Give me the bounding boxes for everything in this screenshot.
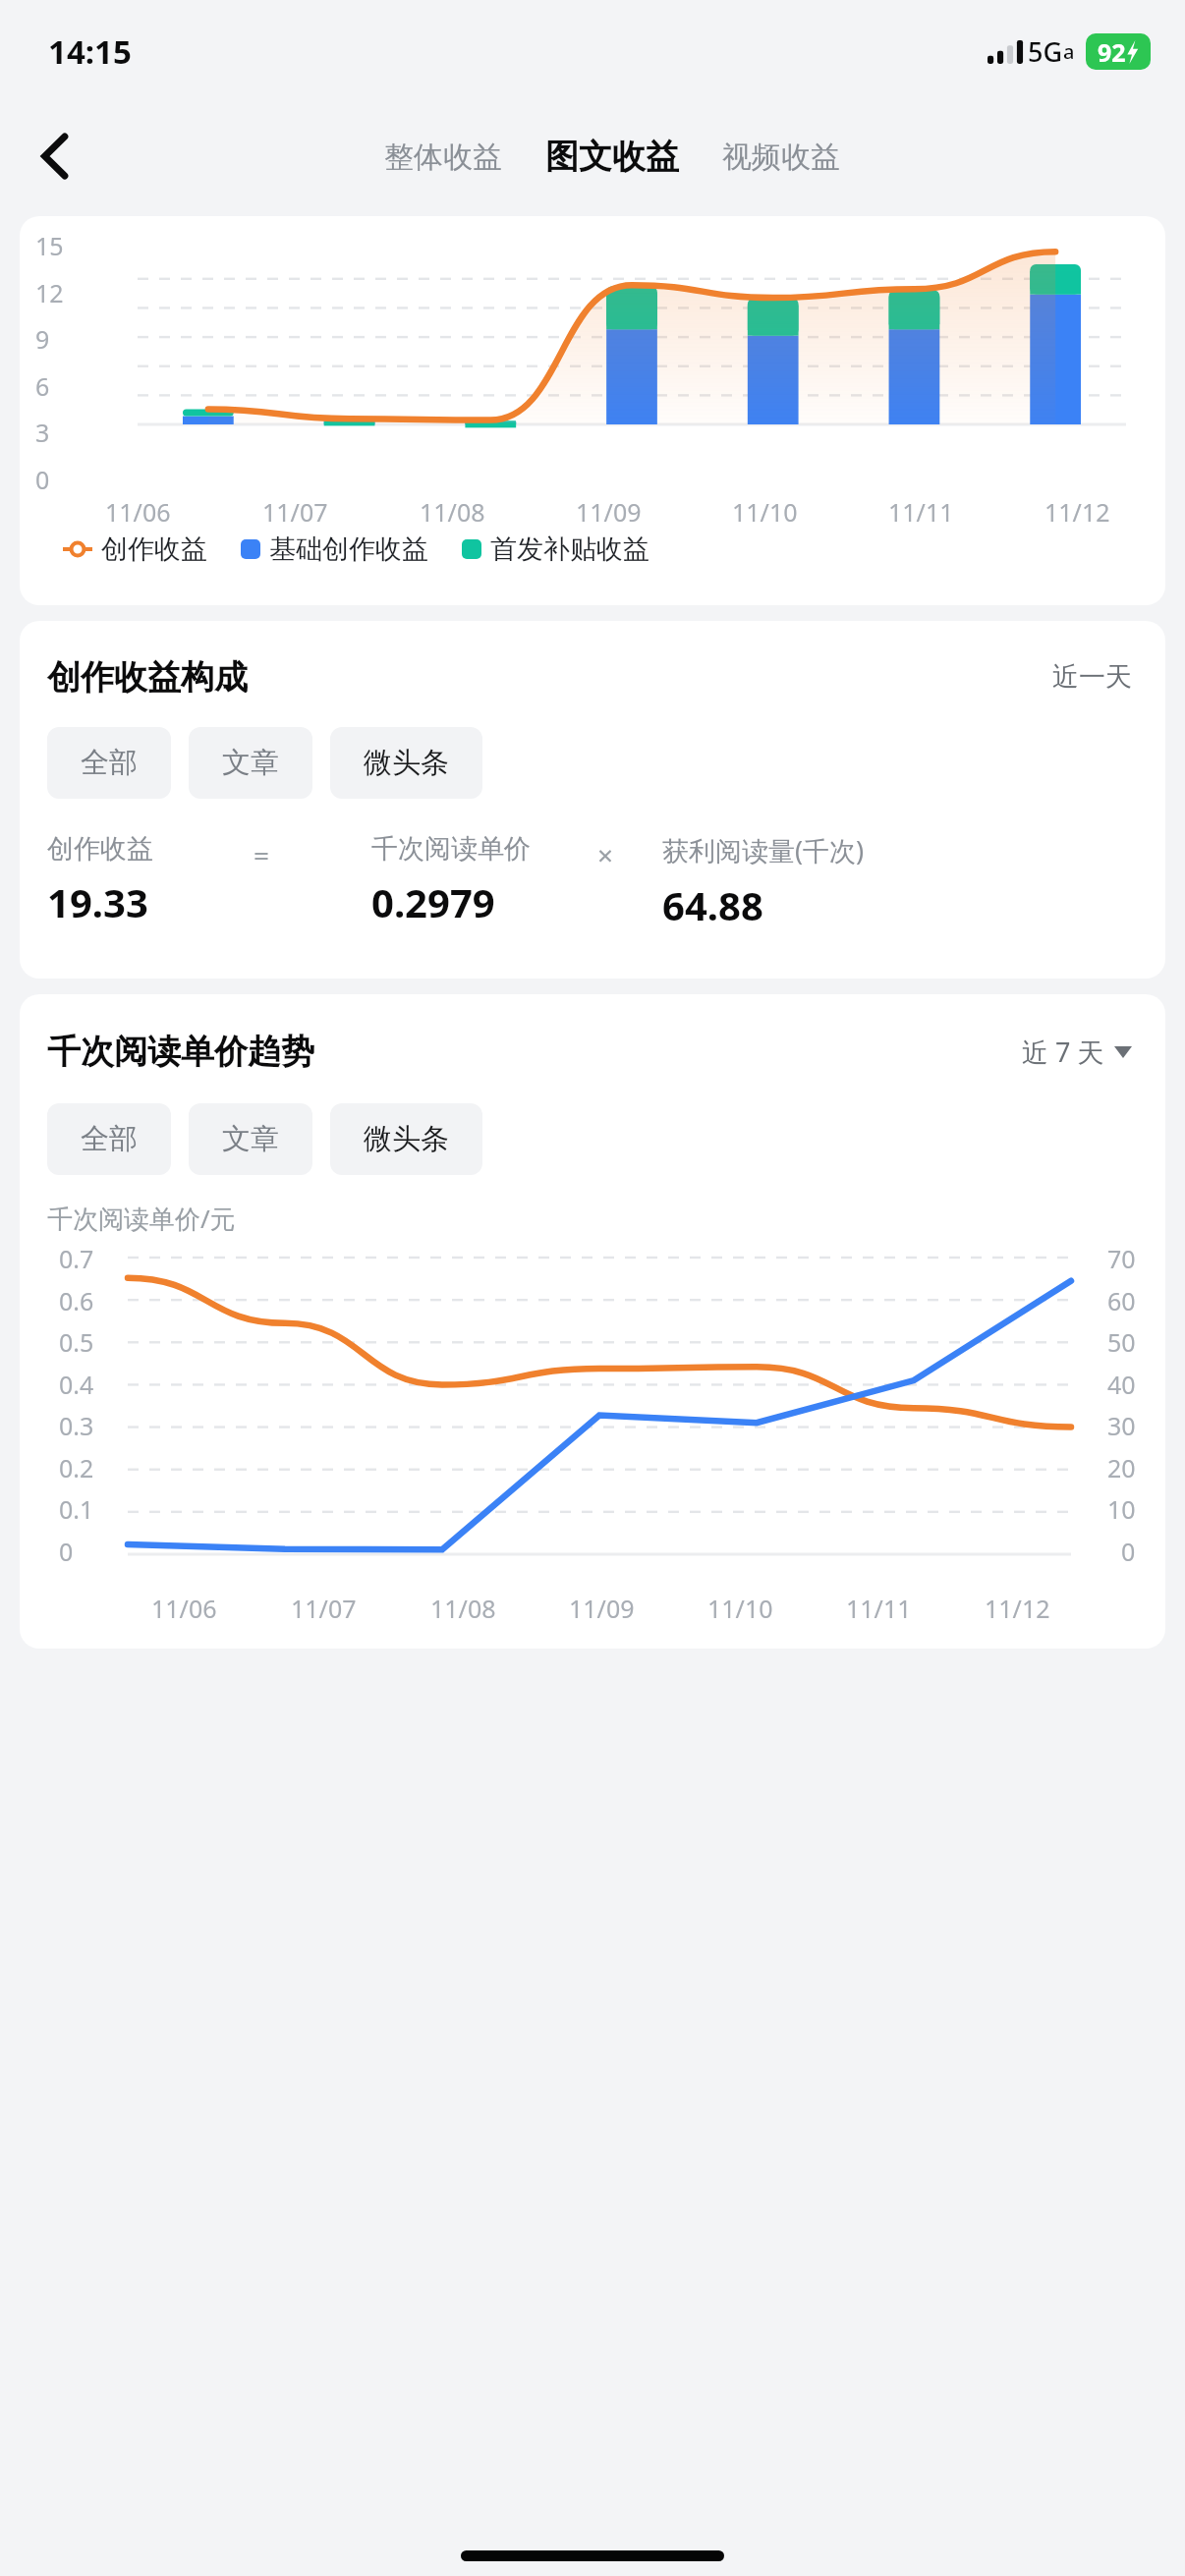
staticText: 全部 <box>81 1121 138 1157</box>
staticText: 近一天 <box>1052 660 1132 694</box>
button[interactable]: 图文收益 <box>539 126 685 188</box>
button[interactable]: 基础创作收益 <box>241 532 428 566</box>
staticText: 文章 <box>222 745 279 781</box>
staticText: a <box>1063 38 1075 65</box>
staticText: 创作收益构成 <box>47 656 248 699</box>
staticText: 9 <box>35 322 50 356</box>
staticText: 11/12 <box>985 1592 1050 1625</box>
staticText: 50 <box>1107 1325 1136 1359</box>
staticText: 11/06 <box>151 1592 217 1625</box>
button[interactable]: 首发补贴收益 <box>462 532 649 566</box>
staticText: = <box>254 836 270 873</box>
staticText: 11/11 <box>846 1592 912 1625</box>
staticText: 11/10 <box>732 495 798 529</box>
button[interactable]: 文章 <box>189 727 312 799</box>
staticText: 千次阅读单价趋势 <box>47 1031 314 1073</box>
staticText: 文章 <box>222 1121 279 1157</box>
staticText: 11/09 <box>569 1592 635 1625</box>
staticText: 0.2979 <box>371 875 495 928</box>
staticText: 0.2 <box>59 1451 94 1484</box>
staticText: 19.33 <box>47 875 148 928</box>
staticText: 创作收益 <box>47 832 153 866</box>
staticText: 0.4 <box>59 1368 94 1401</box>
staticText: 0 <box>1121 1535 1136 1568</box>
staticText: 30 <box>1107 1409 1136 1442</box>
staticText: 20 <box>1107 1451 1136 1484</box>
staticText: 视频收益 <box>722 139 840 176</box>
staticText: 全部 <box>81 745 138 781</box>
staticText: 0.6 <box>59 1284 94 1317</box>
staticText: 创作收益 <box>101 532 207 566</box>
staticText: 微头条 <box>364 745 449 781</box>
button[interactable]: Back <box>14 115 96 197</box>
staticText: 0.3 <box>59 1409 94 1442</box>
staticText: 3 <box>35 416 50 449</box>
staticText: 11/08 <box>420 495 485 529</box>
staticText: 0.7 <box>59 1242 94 1275</box>
staticText: 获利阅读量(千次) <box>662 832 865 868</box>
staticText: 11/11 <box>888 495 954 529</box>
staticText: 12 <box>35 276 64 309</box>
staticText: 首发补贴收益 <box>490 532 649 566</box>
staticText: 11/06 <box>105 495 171 529</box>
button[interactable]: 全部 <box>47 1103 171 1175</box>
button[interactable]: 全部 <box>47 727 171 799</box>
staticText: 14:15 <box>48 29 132 74</box>
staticText: 近 7 天 <box>1022 1034 1104 1070</box>
staticText: 整体收益 <box>384 139 502 176</box>
staticText: 70 <box>1107 1242 1136 1275</box>
staticText: 0.5 <box>59 1325 94 1359</box>
button[interactable]: 文章 <box>189 1103 312 1175</box>
staticText: 图文收益 <box>545 136 679 178</box>
staticText: 64.88 <box>662 878 763 931</box>
staticText: 11/07 <box>291 1592 357 1625</box>
button[interactable]: 视频收益 <box>716 129 846 186</box>
staticText: 15 <box>35 229 64 262</box>
staticText: 11/10 <box>707 1592 773 1625</box>
staticText: 千次阅读单价/元 <box>47 1201 236 1236</box>
staticText: 40 <box>1107 1368 1136 1401</box>
staticText: × <box>597 836 614 873</box>
staticText: 基础创作收益 <box>269 532 428 566</box>
button[interactable]: 近一天 <box>1046 654 1138 700</box>
staticText: 11/07 <box>262 495 328 529</box>
button[interactable]: 创作收益 <box>63 532 207 566</box>
staticText: 0.1 <box>59 1492 94 1526</box>
staticText: 11/08 <box>430 1592 496 1625</box>
button[interactable]: 近 7 天 <box>1016 1028 1138 1076</box>
staticText: 10 <box>1107 1492 1136 1526</box>
button[interactable]: 微头条 <box>330 1103 482 1175</box>
staticText: 微头条 <box>364 1121 449 1157</box>
staticText: 0 <box>35 463 50 496</box>
staticText: 千次阅读单价 <box>371 832 531 866</box>
staticText: 5G <box>1028 33 1063 70</box>
staticText: 11/12 <box>1044 495 1110 529</box>
staticText: 6 <box>35 369 50 403</box>
staticText: 92 <box>1098 35 1126 69</box>
staticText: 60 <box>1107 1284 1136 1317</box>
button[interactable]: 整体收益 <box>378 129 508 186</box>
button[interactable]: 微头条 <box>330 727 482 799</box>
staticText: 0 <box>59 1535 74 1568</box>
staticText: 11/09 <box>576 495 642 529</box>
